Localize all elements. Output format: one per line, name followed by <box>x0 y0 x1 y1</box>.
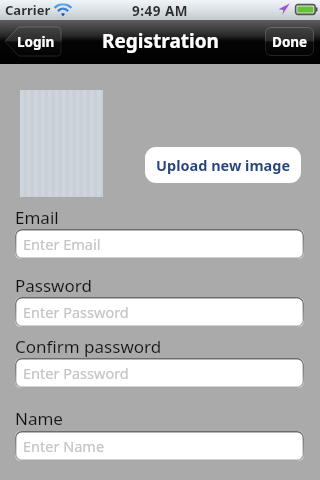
button[interactable]: Upload new image <box>145 147 301 183</box>
staticText: Confirm password <box>15 335 162 358</box>
staticText: Password <box>15 274 92 297</box>
staticText: Email <box>15 206 59 229</box>
staticText: Enter Email <box>23 234 101 254</box>
staticText: Enter Password <box>23 363 129 383</box>
staticText: Login <box>17 33 55 51</box>
button[interactable]: Enter Password <box>15 358 304 388</box>
staticText: Done <box>272 33 308 51</box>
staticText: Carrier <box>5 1 51 19</box>
button[interactable]: Enter Name <box>15 431 304 461</box>
button[interactable]: Done <box>265 27 314 56</box>
button[interactable]: Enter Password <box>15 297 304 327</box>
staticText: Enter Password <box>23 302 129 322</box>
staticText: Upload new image <box>156 155 291 175</box>
staticText: 9:49 AM <box>132 2 189 20</box>
staticText: Enter Name <box>23 436 105 456</box>
staticText: Name <box>15 407 63 430</box>
staticText: Registration <box>102 28 219 54</box>
button[interactable]: Enter Email <box>15 229 304 259</box>
button[interactable]: Login <box>5 27 61 56</box>
